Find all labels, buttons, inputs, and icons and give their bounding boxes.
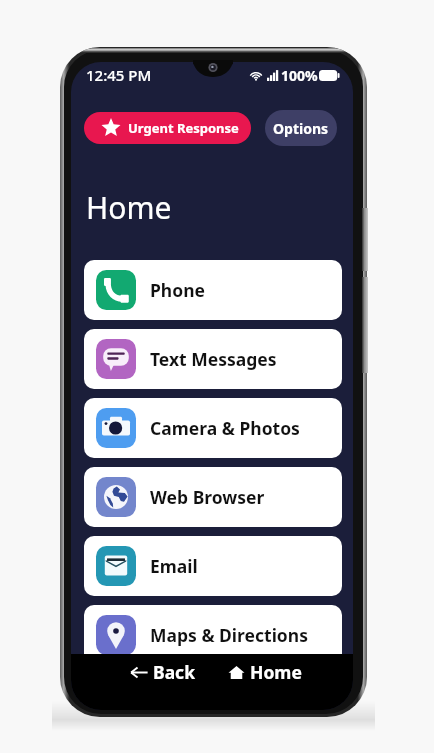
button[interactable]: Back [120,654,205,690]
staticText: Maps & Directions [150,623,308,647]
staticText: Options [273,119,329,138]
staticText: Email [150,554,198,578]
button[interactable]: Urgent Response [84,112,251,144]
staticText: Text Messages [150,347,277,371]
button[interactable]: Maps & Directions [84,605,342,665]
button[interactable]: Email [84,536,342,596]
staticText: Urgent Response [128,119,239,137]
button[interactable]: Options [265,110,337,146]
staticText: 100% [281,66,318,85]
staticText: Web Browser [150,485,265,509]
staticText: 12:45 PM [86,65,152,85]
button[interactable]: Camera & Photos [84,398,342,458]
staticText: Home [250,660,302,684]
staticText: Back [153,660,195,684]
staticText: Phone [150,278,206,302]
staticText: Camera & Photos [150,416,300,440]
button[interactable]: Phone [84,260,342,320]
staticText: Home [86,187,172,228]
button[interactable]: Home [218,654,312,690]
button[interactable]: Text Messages [84,329,342,389]
button[interactable]: Web Browser [84,467,342,527]
